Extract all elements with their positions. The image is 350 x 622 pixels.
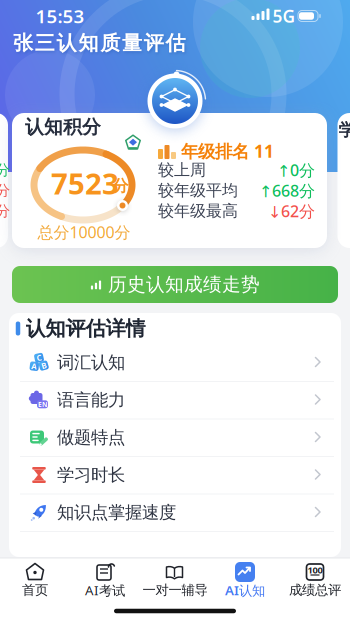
staticText: 较上周 xyxy=(158,160,206,180)
staticText: AI认知 xyxy=(225,581,265,599)
staticText: A xyxy=(31,361,37,371)
staticText: ↑0分 xyxy=(277,159,315,181)
staticText: 词汇认知 xyxy=(57,352,125,373)
staticText: EN xyxy=(38,400,47,409)
button[interactable]: 知识点掌握速度 xyxy=(9,494,341,530)
staticText: 认知评估详情 xyxy=(25,316,145,341)
button[interactable]: EN xyxy=(9,382,341,418)
button[interactable]: AI考试 xyxy=(72,558,138,602)
staticText: 7523 xyxy=(51,163,119,202)
staticText: 成绩总评 xyxy=(289,582,341,598)
staticText: 一对一辅导 xyxy=(142,582,207,598)
staticText: 学 xyxy=(338,119,350,141)
button[interactable]: 100 xyxy=(282,558,348,602)
staticText: 分 xyxy=(0,181,10,199)
staticText: 较年级最高 xyxy=(158,201,238,221)
staticText: 知识点掌握速度 xyxy=(57,502,176,523)
button[interactable]: C xyxy=(9,344,341,380)
staticText: 5G xyxy=(272,4,295,27)
staticText: ↓62分 xyxy=(268,200,315,222)
staticText: 历史认知成绩走势 xyxy=(108,273,260,296)
staticText: 年级排名 11 xyxy=(181,139,274,162)
staticText: ↑668分 xyxy=(259,180,315,201)
staticText: 首页 xyxy=(22,582,48,598)
staticText: B xyxy=(41,360,46,371)
button[interactable]: 学习时长 xyxy=(9,457,341,493)
button[interactable]: 一对一辅导 xyxy=(142,558,208,602)
staticText: 认知积分 xyxy=(25,115,101,138)
staticText: 较年级平均 xyxy=(158,181,238,200)
staticText: 学习时长 xyxy=(57,464,125,486)
staticText: 做题特点 xyxy=(57,427,125,448)
staticText: 语言能力 xyxy=(57,389,125,411)
staticText: C xyxy=(36,352,41,363)
button[interactable]: 历史认知成绩走势 xyxy=(12,266,338,303)
staticText: 15:53 xyxy=(35,4,84,28)
staticText: AI考试 xyxy=(85,581,125,599)
button[interactable]: AI认知 xyxy=(212,558,278,602)
staticText: 分 xyxy=(0,202,10,220)
staticText: 100 xyxy=(307,564,322,576)
staticText: 张三认知质量评估 xyxy=(13,31,186,55)
staticText: 总分10000分 xyxy=(37,221,130,243)
staticText: 分 xyxy=(112,176,128,196)
button[interactable]: 首页 xyxy=(2,558,68,602)
button[interactable]: 做题特点 xyxy=(9,419,341,455)
staticText: 分 xyxy=(0,161,10,179)
